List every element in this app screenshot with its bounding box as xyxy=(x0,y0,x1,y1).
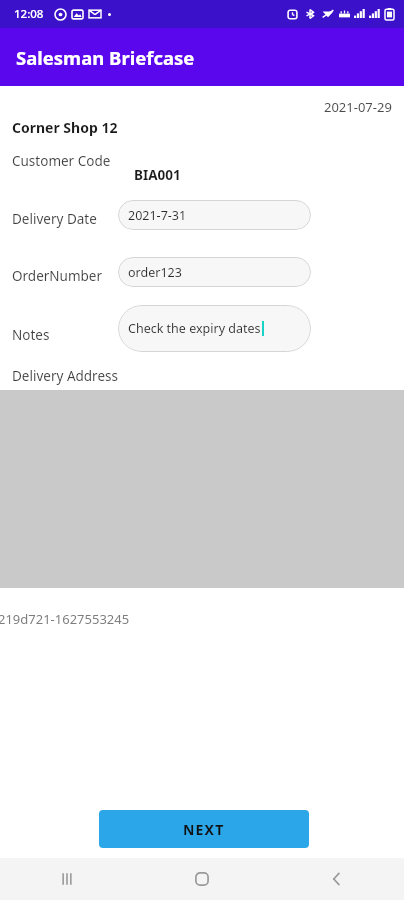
staticText: Customer Code xyxy=(12,152,111,170)
staticText: Delivery Address xyxy=(12,367,118,385)
staticText: 2021-07-29 xyxy=(324,98,392,116)
button[interactable]: 2021-7-31 xyxy=(118,200,311,230)
button[interactable]: Back xyxy=(269,858,404,900)
button[interactable]: order123 xyxy=(118,257,311,287)
staticText: BIA001 xyxy=(134,166,181,184)
staticText: NEXT xyxy=(183,820,225,839)
button[interactable]: Home xyxy=(134,858,269,900)
button[interactable]: NEXT xyxy=(99,810,309,848)
staticText: order123 xyxy=(128,264,182,281)
staticText: Delivery Date xyxy=(12,210,97,228)
staticText: Corner Shop 12 xyxy=(12,118,118,137)
staticText: Notes xyxy=(12,326,50,344)
button[interactable]: Check the expiry dates xyxy=(118,305,311,352)
staticText: Salesman Briefcase xyxy=(16,45,195,70)
button[interactable]: Recents xyxy=(0,858,134,900)
staticText: 2021-7-31 xyxy=(128,207,187,224)
staticText: 12:08 xyxy=(14,6,44,22)
staticText: Check the expiry dates xyxy=(128,320,261,337)
staticText: OrderNumber xyxy=(12,267,103,285)
staticText: 219d721-1627553245 xyxy=(0,610,130,628)
